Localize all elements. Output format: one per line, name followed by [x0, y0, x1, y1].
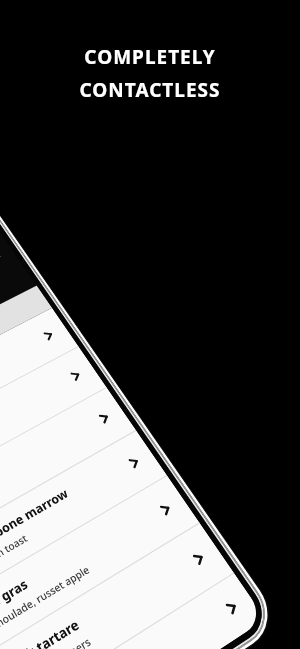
staticText: Duck tartare	[0, 615, 82, 649]
button[interactable]: Duck tartare	[0, 523, 234, 649]
button[interactable]: SEAFOOD	[0, 261, 9, 355]
button[interactable]: Smoked trout	[0, 347, 107, 504]
button[interactable]: Foie gras	[0, 476, 200, 649]
staticText: Roasted bone marrow	[0, 485, 71, 568]
staticText: CONTACTLESS	[79, 77, 221, 103]
staticText: sourdough toast	[0, 531, 30, 584]
button[interactable]: Roasted bone marrow	[0, 431, 167, 605]
staticText: COMPLETELY	[84, 44, 216, 70]
button[interactable]: Tuna crudo	[0, 388, 136, 553]
button[interactable]: Oysters	[0, 308, 79, 458]
button[interactable]: Beef carpaccio	[8, 573, 266, 649]
button[interactable]: SPECIALS	[0, 269, 14, 364]
staticText: quail egg, capers	[12, 634, 94, 649]
staticText: Foie gras	[0, 575, 30, 621]
staticText: remoulade, russet apple	[0, 562, 92, 638]
